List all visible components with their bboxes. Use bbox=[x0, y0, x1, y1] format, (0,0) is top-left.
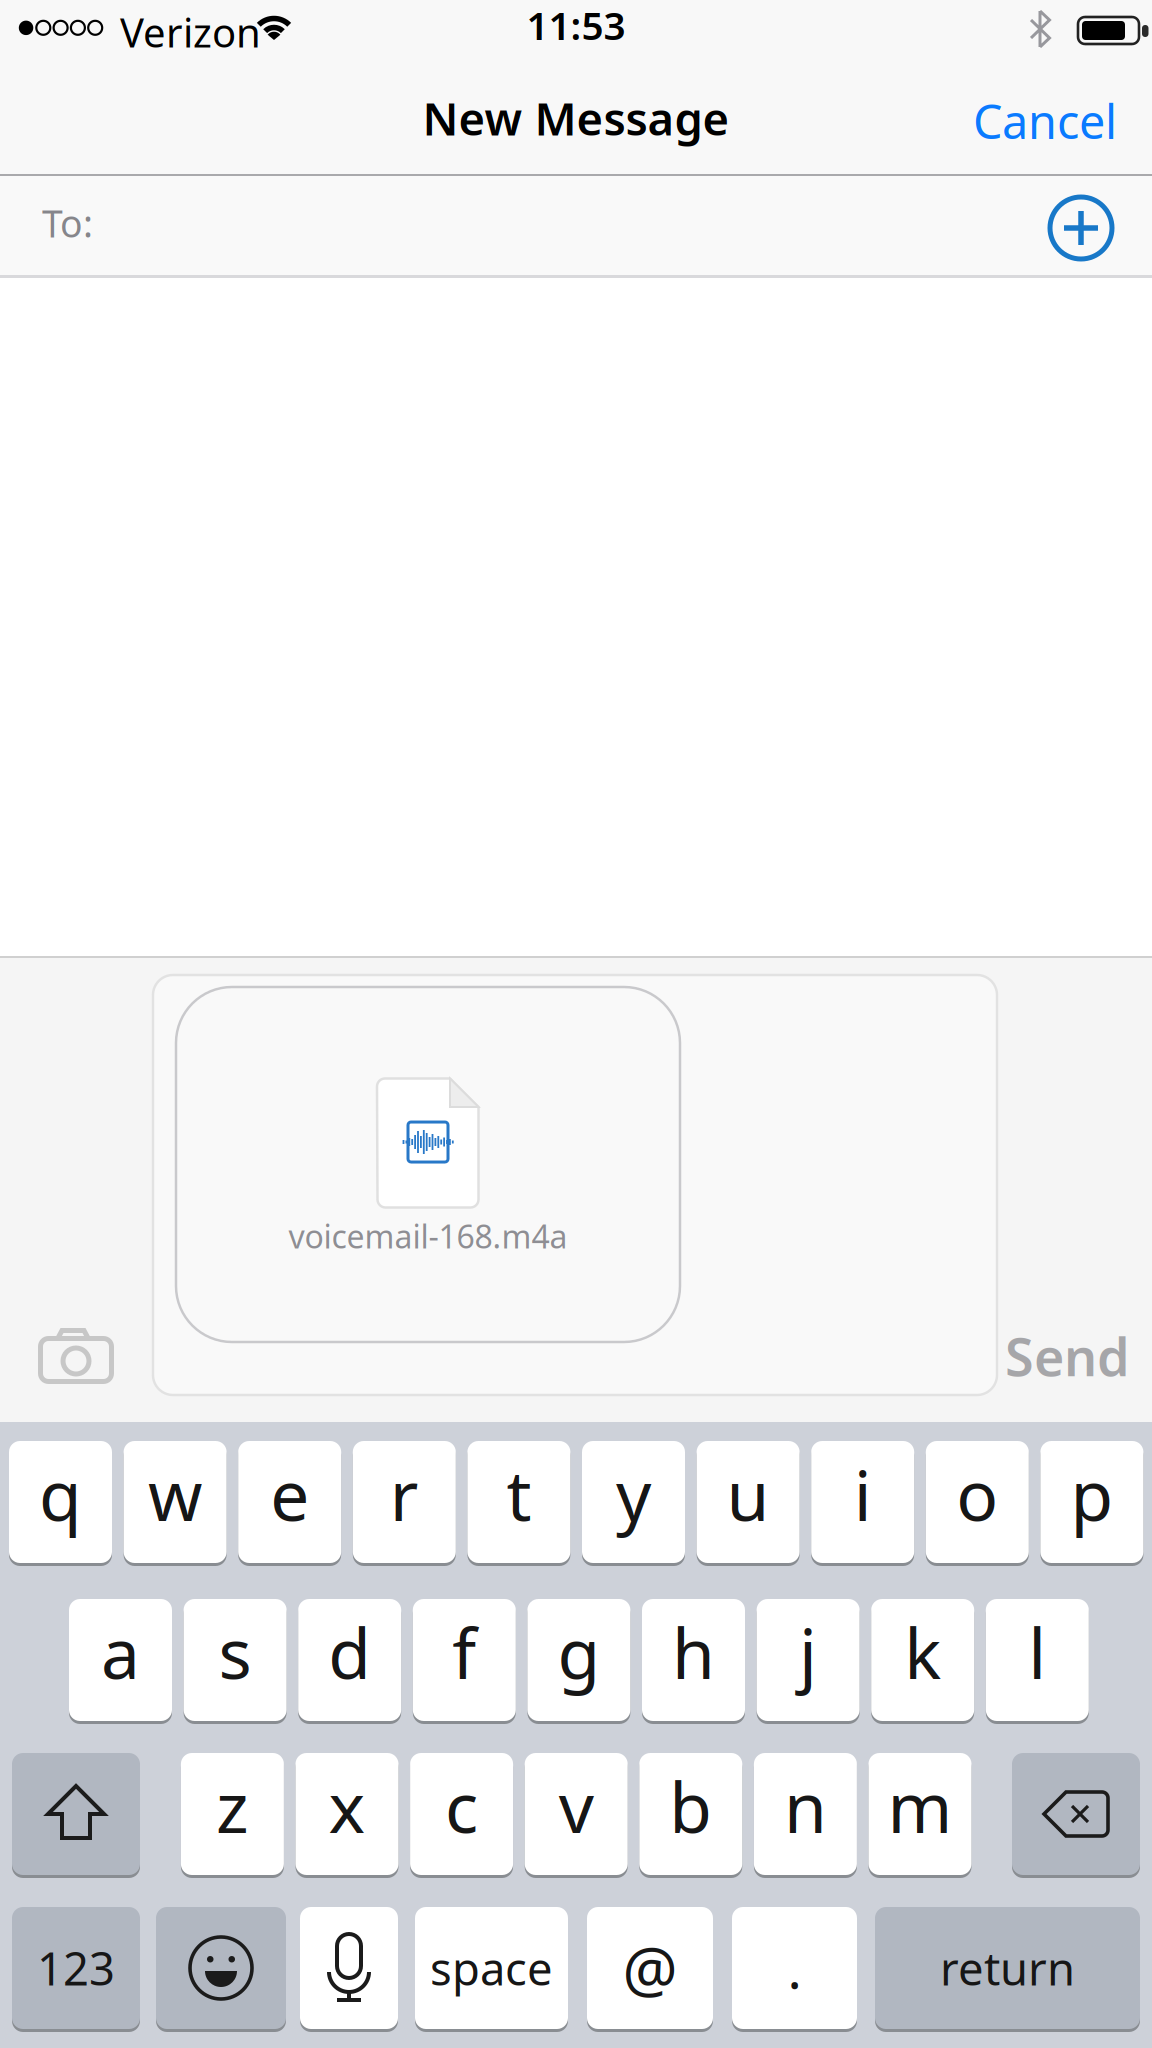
staticText: New Message bbox=[422, 88, 729, 148]
button[interactable]: Emoji bbox=[156, 1907, 286, 2032]
staticText: . bbox=[787, 1933, 801, 2003]
button[interactable]: x bbox=[295, 1753, 398, 1878]
button[interactable]: t bbox=[467, 1441, 570, 1566]
staticText: s bbox=[219, 1606, 252, 1698]
button[interactable]: 123 bbox=[12, 1907, 140, 2032]
staticText: l bbox=[1028, 1606, 1046, 1698]
button[interactable]: y bbox=[582, 1441, 685, 1566]
button[interactable]: u bbox=[697, 1441, 800, 1566]
staticText: v bbox=[559, 1760, 594, 1852]
button[interactable]: j bbox=[757, 1599, 860, 1724]
button[interactable]: d bbox=[298, 1599, 401, 1724]
button[interactable]: v bbox=[525, 1753, 628, 1878]
button[interactable]: f bbox=[413, 1599, 516, 1724]
staticText: g bbox=[557, 1606, 600, 1698]
button[interactable]: Cancel bbox=[0, 0, 300, 52]
button[interactable]: k bbox=[871, 1599, 974, 1724]
button[interactable]: m bbox=[868, 1753, 971, 1878]
staticText: t bbox=[506, 1448, 531, 1540]
button[interactable]: p bbox=[1040, 1441, 1143, 1566]
button[interactable]: Camera bbox=[38, 1328, 114, 1384]
staticText: m bbox=[887, 1760, 952, 1852]
staticText: Verizon bbox=[120, 5, 261, 58]
staticText: To: bbox=[42, 198, 93, 248]
button[interactable]: e bbox=[238, 1441, 341, 1566]
button[interactable]: Send bbox=[830, 0, 1130, 52]
button[interactable]: q bbox=[9, 1441, 112, 1566]
button[interactable]: i bbox=[811, 1441, 914, 1566]
button[interactable]: o bbox=[926, 1441, 1029, 1566]
staticText: 11:53 bbox=[526, 0, 625, 51]
button[interactable]: return bbox=[875, 1907, 1140, 2032]
button[interactable]: b bbox=[639, 1753, 742, 1878]
staticText: d bbox=[328, 1606, 371, 1698]
button[interactable]: Dictate bbox=[300, 1907, 398, 2032]
staticText: z bbox=[216, 1760, 249, 1852]
staticText: k bbox=[904, 1606, 941, 1698]
button[interactable]: Add Contact bbox=[1050, 197, 1112, 259]
staticText: h bbox=[672, 1606, 715, 1698]
button[interactable]: s bbox=[184, 1599, 287, 1724]
staticText: i bbox=[854, 1448, 872, 1540]
button[interactable]: space bbox=[415, 1907, 568, 2032]
staticText: c bbox=[445, 1760, 478, 1852]
button[interactable]: w bbox=[124, 1441, 227, 1566]
staticText: o bbox=[956, 1448, 998, 1540]
staticText: 123 bbox=[37, 1938, 115, 1998]
button[interactable]: Delete bbox=[1012, 1753, 1140, 1878]
staticText: Cancel bbox=[973, 90, 1117, 152]
button[interactable]: c bbox=[410, 1753, 513, 1878]
staticText: @ bbox=[622, 1927, 677, 2009]
staticText: w bbox=[148, 1448, 202, 1540]
staticText: a bbox=[101, 1606, 140, 1698]
staticText: y bbox=[616, 1448, 651, 1540]
staticText: Send bbox=[1005, 1321, 1130, 1391]
staticText: u bbox=[727, 1448, 770, 1540]
button[interactable]: n bbox=[754, 1753, 857, 1878]
staticText: f bbox=[452, 1606, 476, 1698]
staticText: e bbox=[270, 1448, 309, 1540]
staticText: q bbox=[39, 1448, 82, 1540]
button[interactable]: g bbox=[527, 1599, 630, 1724]
button[interactable]: z bbox=[181, 1753, 284, 1878]
staticText: b bbox=[669, 1760, 712, 1852]
staticText: p bbox=[1070, 1448, 1113, 1540]
staticText: return bbox=[940, 1938, 1075, 1998]
button[interactable]: l bbox=[986, 1599, 1089, 1724]
staticText: space bbox=[430, 1938, 553, 1998]
staticText: r bbox=[390, 1448, 419, 1540]
button[interactable]: a bbox=[69, 1599, 172, 1724]
button[interactable]: Shift bbox=[12, 1753, 140, 1878]
staticText: voicemail-168.m4a bbox=[288, 1215, 567, 1257]
button[interactable]: @ bbox=[587, 1907, 713, 2032]
button[interactable]: . bbox=[732, 1907, 857, 2032]
staticText: n bbox=[784, 1760, 827, 1852]
staticText: j bbox=[799, 1606, 817, 1698]
button[interactable]: r bbox=[353, 1441, 456, 1566]
staticText: x bbox=[328, 1760, 365, 1852]
button[interactable]: h bbox=[642, 1599, 745, 1724]
